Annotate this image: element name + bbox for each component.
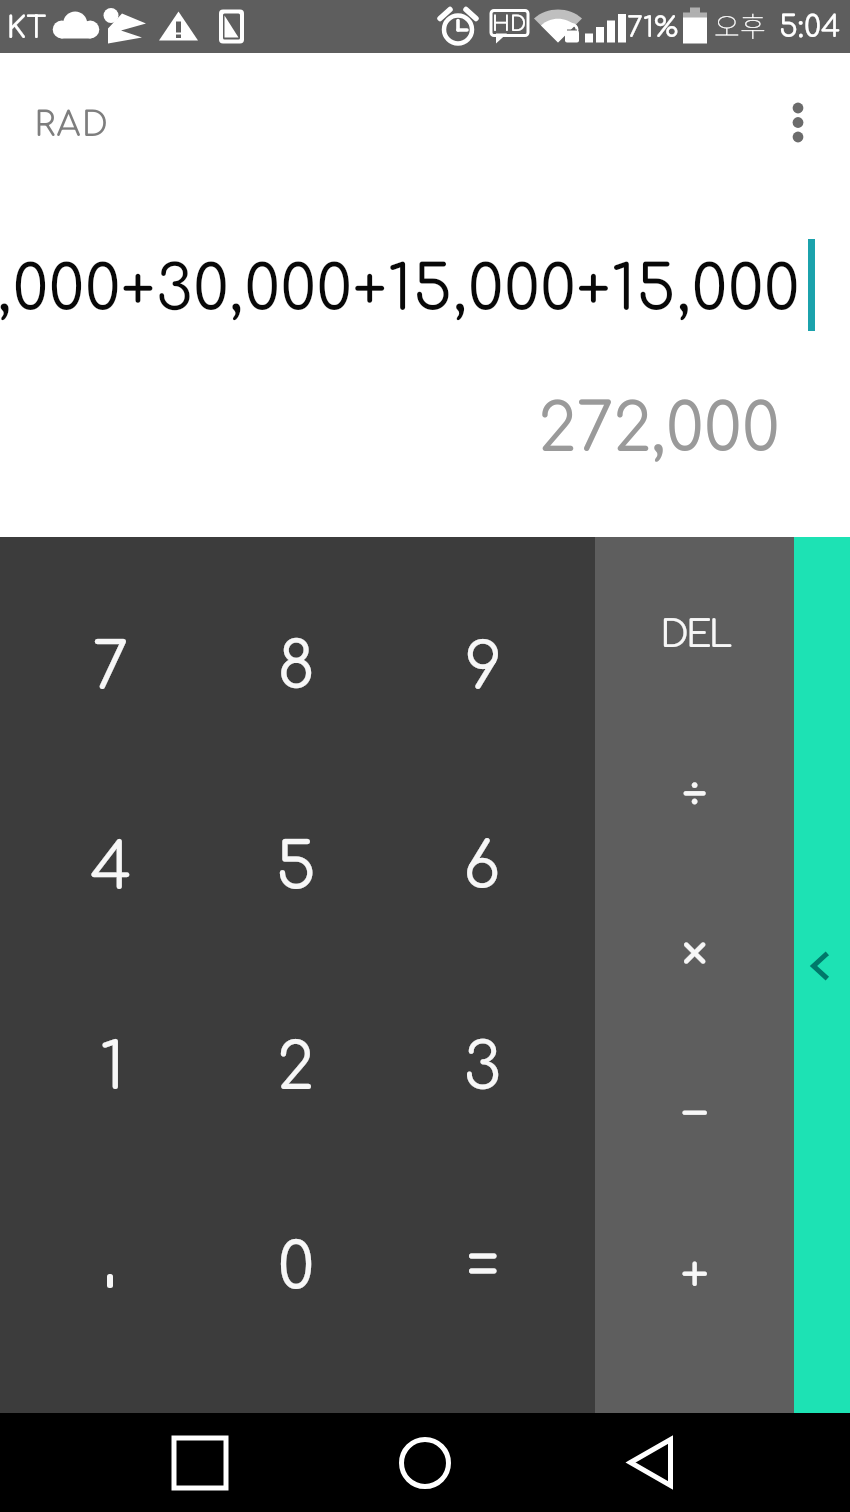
button[interactable]: Recents <box>140 1413 260 1512</box>
button[interactable]: 6 <box>390 763 576 963</box>
button[interactable]: 9 <box>390 563 576 763</box>
button[interactable]: 2 <box>203 964 389 1164</box>
button[interactable]: 1 <box>17 964 203 1164</box>
button[interactable]: 0 <box>203 1164 389 1364</box>
button[interactable]: Divide <box>595 712 794 872</box>
button[interactable]: 7 <box>17 563 203 763</box>
button[interactable]: decimal point <box>17 1164 203 1364</box>
button[interactable]: Back <box>590 1413 710 1512</box>
button[interactable]: Home <box>365 1413 485 1512</box>
button[interactable]: Delete <box>595 552 794 712</box>
button[interactable]: Add <box>595 1192 794 1352</box>
button[interactable]: More options <box>766 79 832 165</box>
button[interactable]: 5 <box>203 763 389 963</box>
button[interactable]: Angle unit RAD <box>20 95 122 149</box>
button[interactable]: Open advanced pad <box>794 537 850 1413</box>
button[interactable]: Subtract <box>595 1032 794 1192</box>
button[interactable]: equals <box>390 1164 576 1364</box>
button[interactable]: 8 <box>203 563 389 763</box>
button[interactable]: 3 <box>390 964 576 1164</box>
button[interactable]: Multiply <box>595 872 794 1032</box>
button[interactable]: 4 <box>17 763 203 963</box>
